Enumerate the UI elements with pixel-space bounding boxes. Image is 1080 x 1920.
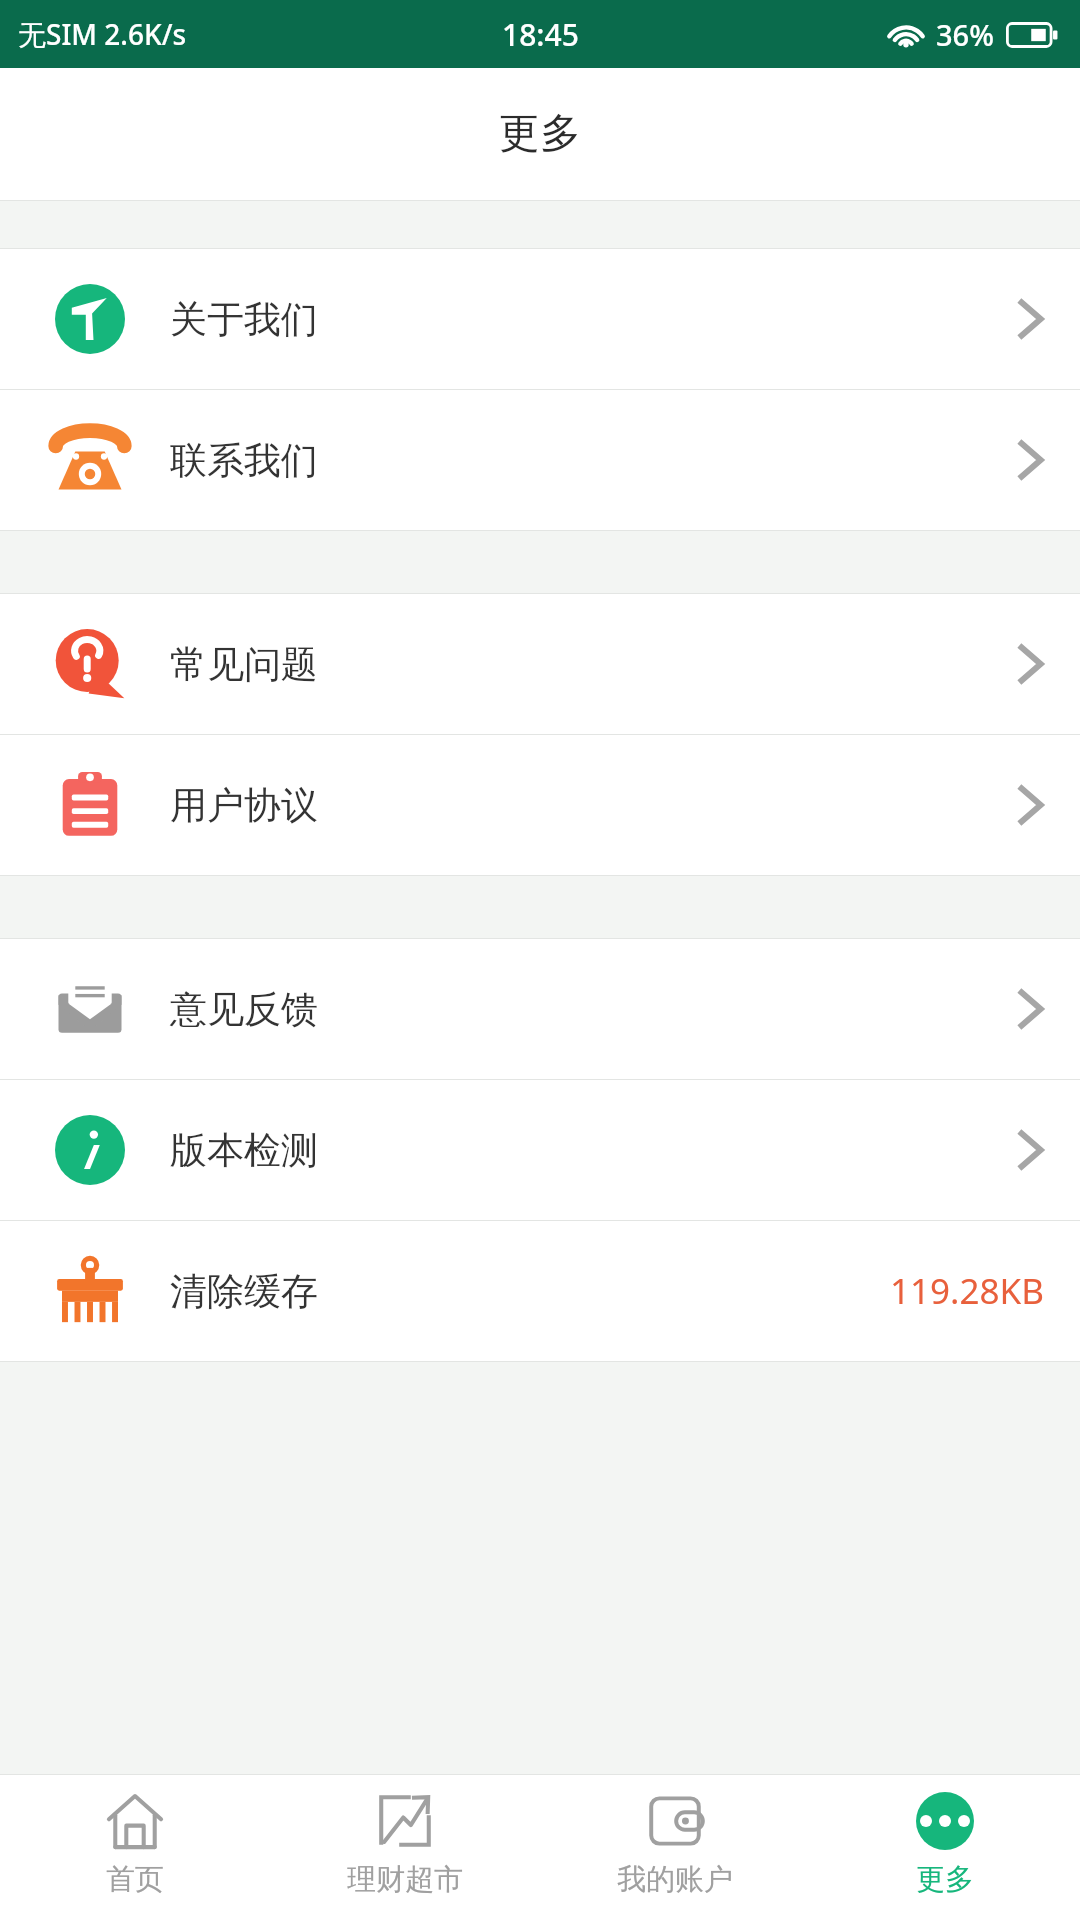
button[interactable]: 意见反馈 [0, 939, 1080, 1079]
staticText: 常见问题 [170, 641, 318, 688]
staticText: 版本检测 [170, 1127, 318, 1174]
button[interactable]: 我的账户 [540, 1775, 810, 1920]
staticText: 用户协议 [170, 782, 318, 829]
staticText: 无SIM 2.6K/s [18, 15, 187, 53]
staticText: 意见反馈 [170, 986, 318, 1033]
staticText: 联系我们 [170, 437, 318, 484]
button[interactable]: 首页 [0, 1775, 270, 1920]
staticText: 清除缓存 [170, 1268, 318, 1315]
staticText: 18:45 [502, 14, 579, 55]
button[interactable]: 用户协议 [0, 735, 1080, 875]
staticText: 首页 [106, 1861, 164, 1898]
other: 理财超市 [376, 1792, 434, 1850]
button[interactable]: 理财超市 [270, 1775, 540, 1920]
other: 我的账户 [646, 1792, 704, 1850]
staticText: 理财超市 [347, 1861, 463, 1898]
button[interactable]: 联系我们 [0, 390, 1080, 530]
staticText: 119.28KB [890, 1267, 1044, 1315]
button[interactable]: 关于我们 [0, 249, 1080, 389]
staticText: 我的账户 [617, 1861, 733, 1898]
other: 首页 [106, 1792, 164, 1850]
staticText: 更多 [916, 1861, 974, 1898]
staticText: 更多 [499, 108, 581, 160]
other: 更多 [916, 1792, 974, 1850]
button[interactable]: 版本检测 [0, 1080, 1080, 1220]
staticText: 关于我们 [170, 296, 318, 343]
button[interactable]: 清除缓存 [0, 1221, 1080, 1361]
button[interactable]: 常见问题 [0, 594, 1080, 734]
button[interactable]: 更多 [810, 1775, 1080, 1920]
staticText: 36% [936, 15, 994, 54]
